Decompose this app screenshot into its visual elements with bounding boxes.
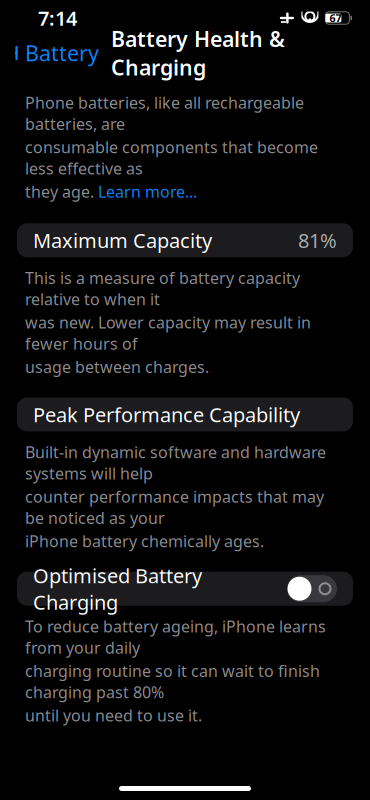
staticText: usage between charges.	[25, 356, 209, 377]
button[interactable]: Battery	[0, 33, 99, 73]
button[interactable]: Learn more...	[98, 181, 197, 202]
staticText: was new. Lower capacity may result in fe…	[25, 312, 311, 354]
button[interactable]: Optimised Battery Charging	[17, 572, 353, 606]
staticText: counter performance impacts that may be …	[25, 486, 324, 528]
staticText: 67	[329, 11, 341, 25]
staticText: Peak Performance Capability	[33, 401, 300, 428]
button[interactable]: Maximum Capacity	[17, 223, 353, 257]
staticText: Maximum Capacity	[33, 227, 212, 254]
staticText: This is a measure of battery capacity re…	[25, 267, 300, 310]
staticText: Learn more...	[98, 181, 197, 202]
staticText: Built-in dynamic software and hardware s…	[25, 441, 326, 484]
staticText: iPhone battery chemically ages.	[25, 530, 264, 552]
button[interactable]: Peak Performance Capability	[17, 397, 353, 431]
staticText: they age.	[25, 181, 98, 202]
staticText: Battery Health & Charging	[111, 25, 285, 81]
staticText: charging routine so it can wait to finis…	[25, 660, 320, 703]
staticText: until you need to use it.	[25, 705, 202, 726]
staticText: Optimised Battery Charging	[33, 562, 202, 615]
staticText: Battery	[25, 39, 99, 67]
staticText: To reduce battery ageing, iPhone learns …	[25, 616, 326, 658]
staticText: 7:14	[38, 5, 77, 31]
staticText: Phone batteries, like all rechargeable b…	[25, 92, 304, 134]
staticText: consumable components that become less e…	[25, 136, 318, 179]
staticText: 81%	[298, 227, 337, 254]
